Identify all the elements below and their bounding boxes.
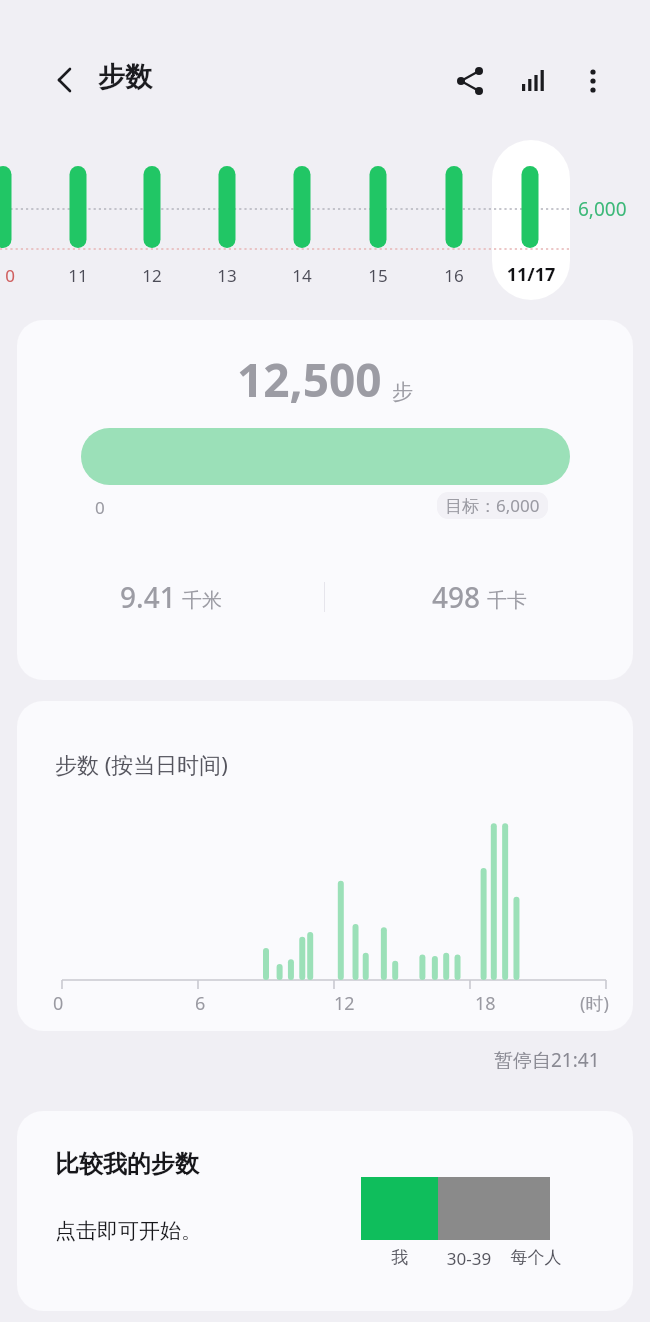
staticText: 6,000 [578,196,627,222]
staticText: 步数 [98,60,152,94]
staticText: 暂停自21:41 [494,1047,600,1073]
staticText: 0 [53,991,64,1016]
staticText: 点击即可开始。 [55,1218,202,1244]
staticText: 9.41 [120,578,176,616]
staticText: 16 [444,264,464,287]
staticText: 11/17 [492,262,570,287]
button[interactable]: 12,500 [17,320,633,680]
staticText: 11 [68,264,88,287]
staticText: 千卡 [487,588,527,613]
button[interactable]: Back [40,57,86,103]
button[interactable]: Share [447,58,493,104]
staticText: 比较我的步数 [55,1149,199,1179]
button[interactable]: 比较我的步数 [17,1111,633,1311]
staticText: 6 [195,991,206,1016]
staticText: 步数 (按当日时间) [55,749,228,779]
staticText: 我 [361,1247,438,1268]
staticText: 0 [0,264,20,287]
staticText: 千米 [182,588,222,613]
staticText: (时) [580,991,609,1016]
staticText: 每个人 [503,1247,569,1268]
staticText: 12 [334,991,355,1016]
staticText: 步 [392,379,413,405]
staticText: 15 [368,264,388,287]
button[interactable] [492,140,570,300]
staticText: 0 [95,496,105,519]
staticText: 13 [217,264,237,287]
staticText: 12,500 [237,348,382,411]
staticText: 30-39 [437,1247,501,1270]
button[interactable]: More options [570,58,616,104]
button[interactable]: Chart [510,58,556,104]
staticText: 14 [292,264,312,287]
staticText: 498 [432,578,481,616]
staticText: 12 [142,264,162,287]
staticText: 目标：6,000 [445,494,540,517]
staticText: 18 [475,991,496,1016]
button[interactable]: 步数 (按当日时间) [17,701,633,1031]
